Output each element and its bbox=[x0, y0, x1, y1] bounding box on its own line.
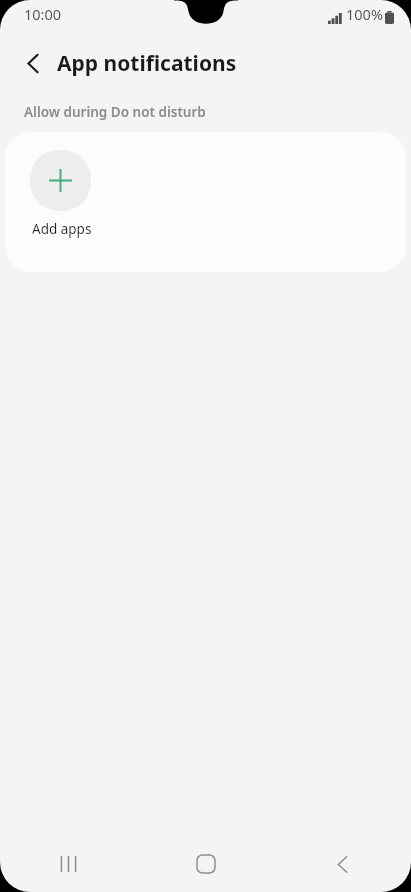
button[interactable]: Back bbox=[11, 41, 55, 85]
staticText: Add apps bbox=[32, 220, 92, 238]
button[interactable]: Back bbox=[274, 836, 411, 892]
staticText: 10:00 bbox=[24, 4, 62, 24]
staticText: Allow during Do not disturb bbox=[24, 103, 206, 121]
staticText: 100% bbox=[346, 4, 383, 24]
button[interactable]: Home bbox=[137, 836, 274, 892]
staticText: App notifications bbox=[57, 49, 237, 78]
button[interactable]: Add apps bbox=[30, 150, 106, 238]
button[interactable]: Recent apps bbox=[0, 836, 137, 892]
